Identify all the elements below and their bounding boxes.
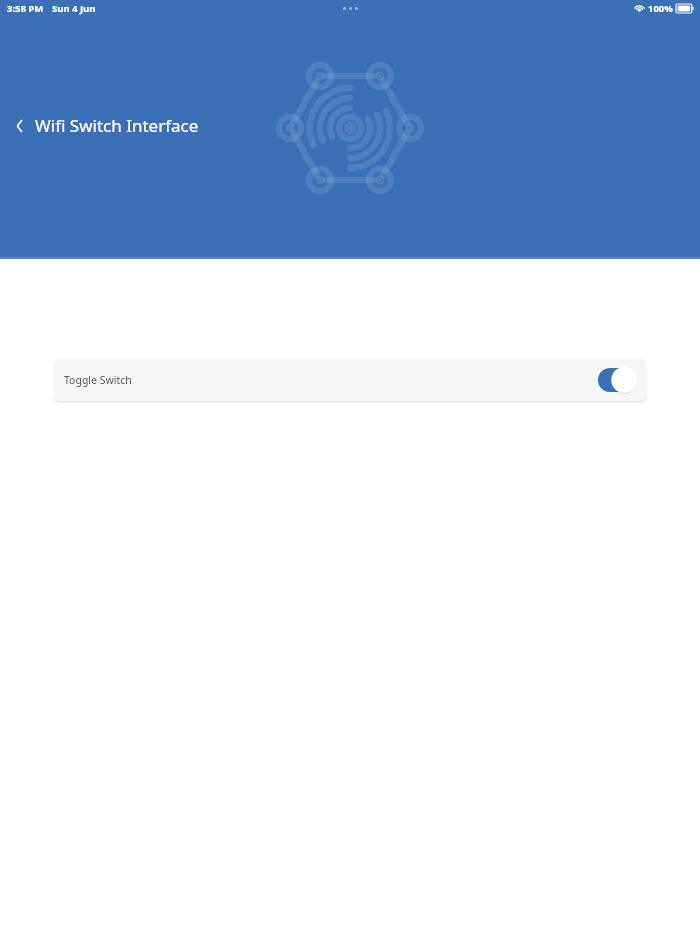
staticText: 3:58 PM bbox=[7, 2, 44, 15]
staticText: Wifi Switch Interface bbox=[35, 114, 199, 137]
button[interactable]: Toggle Switch bbox=[53, 358, 647, 401]
other: Back bbox=[12, 116, 28, 136]
staticText: Sun 4 Jun bbox=[52, 2, 96, 15]
button[interactable]: Back bbox=[6, 108, 211, 143]
staticText: Toggle Switch bbox=[64, 373, 132, 387]
button[interactable]: Toggle Switch, on bbox=[595, 365, 639, 395]
staticText: 100% bbox=[648, 2, 673, 15]
